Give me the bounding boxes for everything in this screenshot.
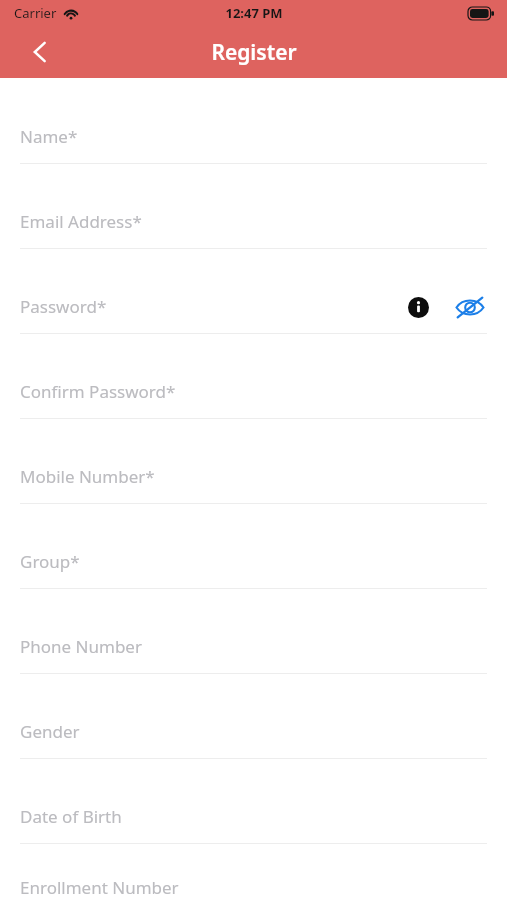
button[interactable]: Mobile Number* xyxy=(0,450,507,535)
button[interactable]: Date of Birth xyxy=(0,790,507,875)
staticText: Date of Birth xyxy=(20,805,122,828)
staticText: Email Address* xyxy=(20,210,142,233)
staticText: Enrollment Number xyxy=(20,876,179,899)
staticText: Register xyxy=(211,38,297,67)
button[interactable]: Password requirements info xyxy=(403,292,433,322)
staticText: 12:47 PM xyxy=(225,4,283,22)
staticText: Group* xyxy=(20,550,80,573)
staticText: Phone Number xyxy=(20,635,142,658)
button[interactable]: Show password xyxy=(453,290,487,324)
staticText: Mobile Number* xyxy=(20,465,155,488)
button[interactable]: Phone Number xyxy=(0,620,507,705)
staticText: Confirm Password* xyxy=(20,380,176,403)
button[interactable]: Name* xyxy=(0,110,507,195)
staticText: Gender xyxy=(20,720,80,743)
button[interactable]: Gender xyxy=(0,705,507,790)
button[interactable]: Enrollment Number xyxy=(0,875,507,900)
button[interactable]: Confirm Password* xyxy=(0,365,507,450)
button[interactable]: Email Address* xyxy=(0,195,507,280)
staticText: Name* xyxy=(20,125,78,148)
button[interactable]: Back xyxy=(14,26,66,78)
button[interactable]: Group* xyxy=(0,535,507,620)
button[interactable]: Password* xyxy=(0,280,507,365)
staticText: Password* xyxy=(20,295,107,318)
staticText: Carrier xyxy=(14,4,57,22)
